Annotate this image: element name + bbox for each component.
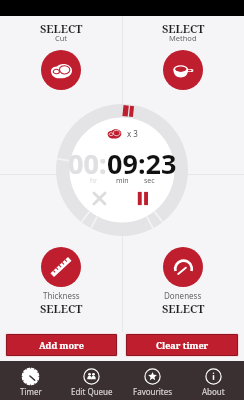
- button[interactable]: Doneness: [122, 174, 244, 332]
- button[interactable]: SELECT: [0, 16, 122, 174]
- button[interactable]: Add more: [7, 335, 116, 355]
- staticText: Thickness: [43, 290, 80, 301]
- button[interactable]: Edit Queue: [61, 361, 122, 400]
- staticText: SELECT: [162, 301, 205, 316]
- staticText: Cut: [55, 33, 68, 43]
- staticText: 09:23: [107, 145, 177, 182]
- button[interactable]: About: [183, 361, 244, 400]
- button[interactable]: Clear timer: [127, 335, 237, 355]
- staticText: 00:: [68, 145, 107, 182]
- staticText: SELECT: [40, 301, 83, 316]
- staticText: Method: [169, 33, 197, 43]
- staticText: x 3: [127, 128, 138, 139]
- staticText: Timer: [20, 386, 42, 397]
- staticText: hr: [90, 176, 98, 186]
- staticText: Clear timer: [156, 339, 209, 351]
- other: About: [204, 367, 223, 386]
- button[interactable]: Thickness: [0, 174, 122, 332]
- staticText: Edit Queue: [71, 386, 113, 397]
- staticText: SELECT: [162, 21, 205, 36]
- staticText: Doneness: [164, 290, 202, 301]
- staticText: min: [116, 176, 129, 186]
- button[interactable]: Timer: [0, 361, 61, 400]
- staticText: Favourites: [133, 386, 173, 397]
- staticText: sec: [144, 176, 155, 186]
- staticText: SELECT: [40, 21, 83, 36]
- button[interactable]: Favourites: [122, 361, 183, 400]
- other: Edit Queue: [82, 367, 101, 386]
- other: Favourites: [143, 367, 162, 386]
- button[interactable]: Cancel timer: [92, 191, 107, 206]
- button[interactable]: SELECT: [122, 16, 244, 174]
- staticText: Add more: [39, 339, 84, 351]
- button[interactable]: Pause timer: [136, 191, 151, 206]
- other: Timer: [21, 367, 40, 386]
- staticText: About: [202, 386, 225, 397]
